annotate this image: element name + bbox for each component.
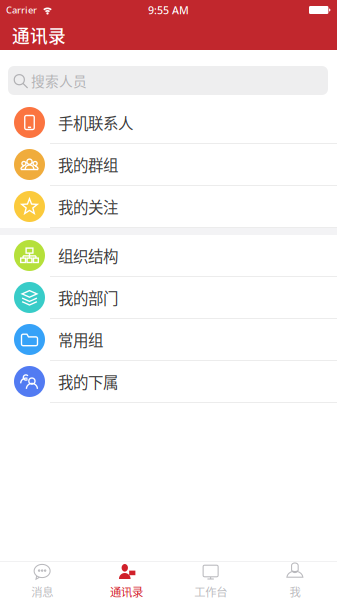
button[interactable]: 手机联系人 (0, 102, 337, 144)
staticText: 我的下属 (58, 370, 118, 393)
staticText: 通讯录 (12, 22, 66, 48)
button[interactable]: 常用组 (0, 319, 337, 361)
button[interactable]: 通讯录 (84, 562, 168, 600)
staticText: 搜索人员 (31, 71, 87, 90)
staticText: 我的群组 (58, 153, 118, 176)
button[interactable]: 我 (253, 562, 337, 600)
staticText: 9:55 AM (148, 3, 189, 17)
staticText: Carrier (6, 4, 37, 16)
staticText: 常用组 (58, 328, 103, 351)
button[interactable]: 消息 (0, 562, 84, 600)
staticText: 消息 (31, 583, 53, 600)
staticText: 组织结构 (58, 244, 118, 267)
staticText: 工作台 (194, 583, 227, 600)
button[interactable]: 我的部门 (0, 277, 337, 319)
staticText: 通讯录 (110, 583, 143, 600)
button[interactable]: 工作台 (168, 562, 253, 600)
button[interactable]: 我的下属 (0, 361, 337, 403)
button[interactable]: 我的群组 (0, 144, 337, 186)
staticText: 我的部门 (58, 286, 118, 309)
staticText: 我 (289, 583, 300, 600)
button[interactable]: 组织结构 (0, 235, 337, 277)
staticText: 手机联系人 (58, 111, 133, 134)
button[interactable]: 我的关注 (0, 186, 337, 228)
staticText: 我的关注 (58, 195, 118, 218)
